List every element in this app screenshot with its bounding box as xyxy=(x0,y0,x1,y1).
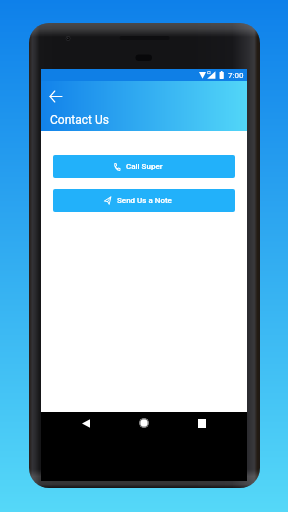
staticText: Send Us a Note xyxy=(117,196,172,205)
button[interactable]: Back xyxy=(74,411,98,435)
staticText: Call Super xyxy=(126,162,163,171)
staticText: Contact Us xyxy=(50,113,109,127)
button[interactable]: Recents xyxy=(190,411,214,435)
button[interactable]: Call Super xyxy=(53,155,235,178)
button[interactable]: Back xyxy=(43,83,69,109)
staticText: 7:00 xyxy=(228,71,244,80)
button[interactable]: Home xyxy=(132,411,156,435)
button[interactable]: Send Us a Note xyxy=(53,189,235,212)
